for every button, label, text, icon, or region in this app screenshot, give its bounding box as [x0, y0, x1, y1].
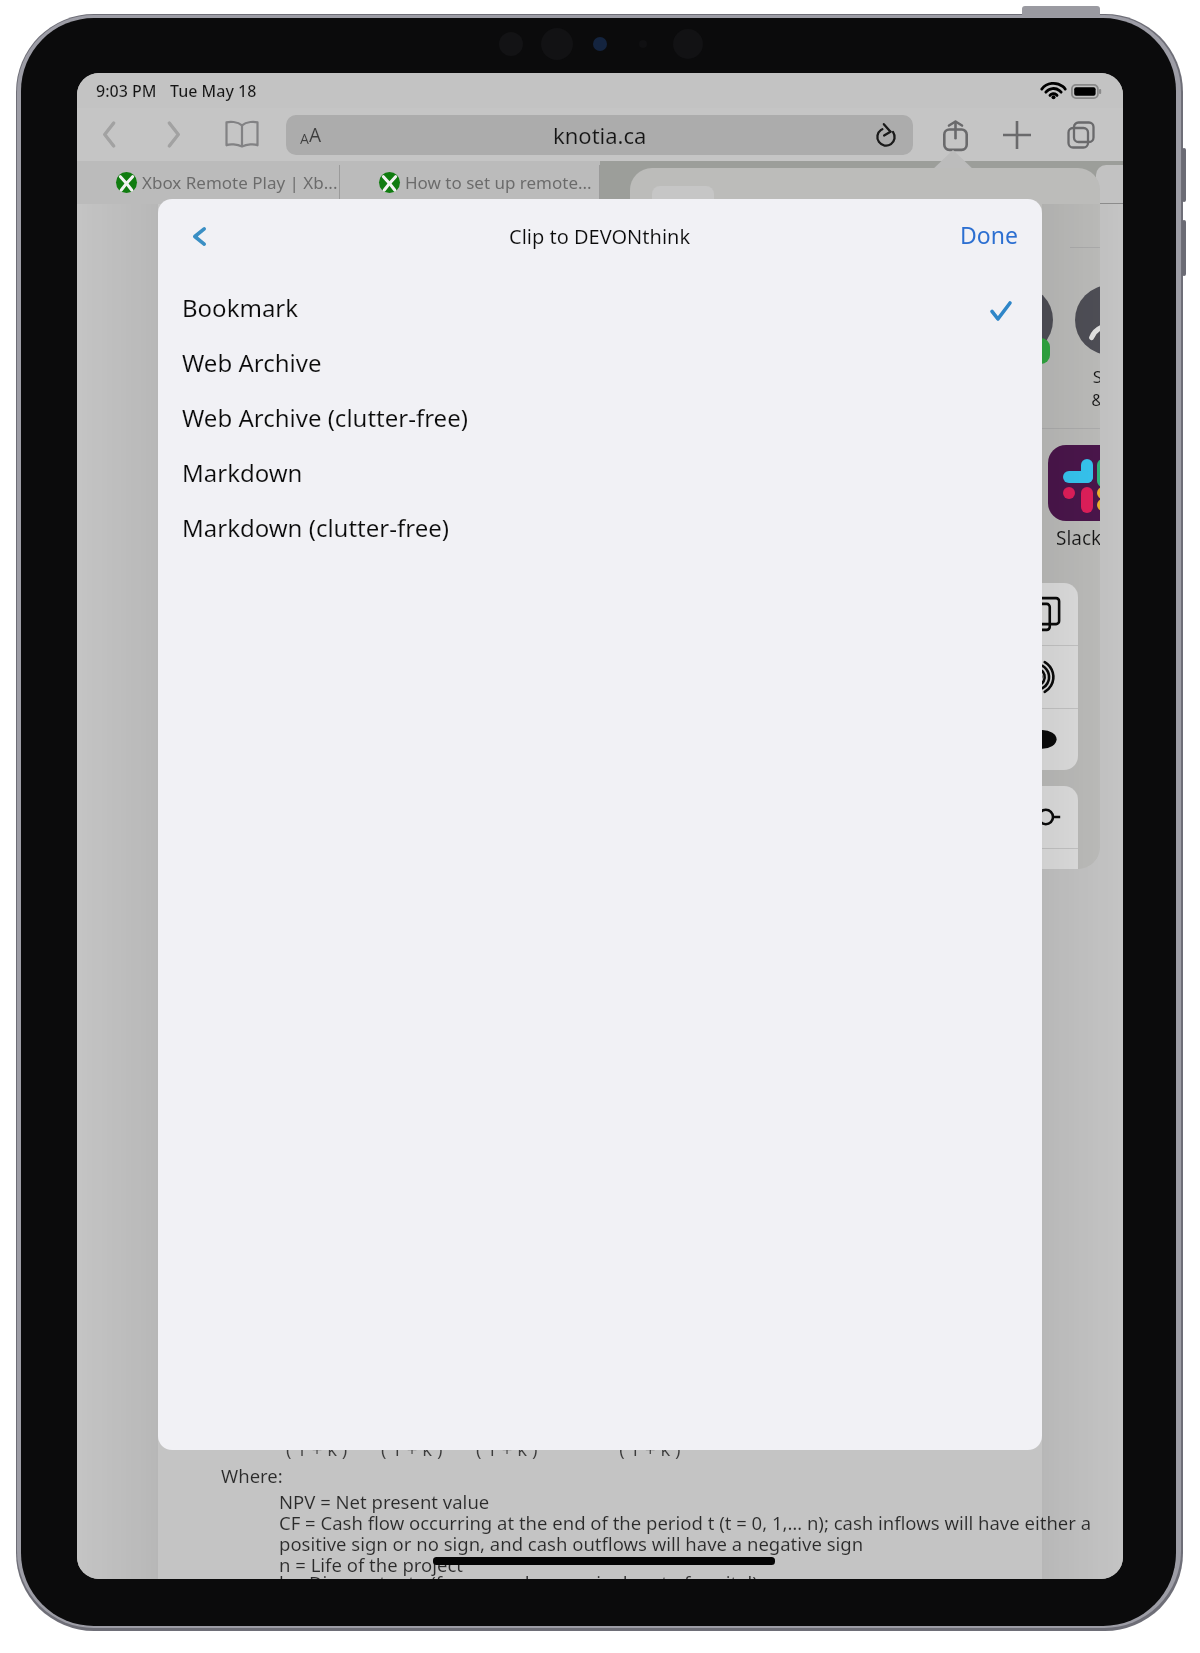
staticText: Web Archive (clutter-free) [182, 401, 468, 434]
staticText: Done [960, 219, 1018, 250]
staticText: ( 1 + k ) ( 1 + k ) ( 1 + k ) ( 1 + k ) [286, 1436, 681, 1461]
button[interactable]: Reload [859, 115, 913, 155]
button[interactable]: Web Archive [158, 335, 1042, 390]
staticText: 9:03 PM [96, 80, 157, 102]
button[interactable]: Show tabs [1057, 108, 1105, 161]
button[interactable]: Markdown (clutter-free) [158, 500, 1042, 555]
button[interactable]: Address bar, knotia.ca [286, 115, 913, 155]
staticText: CF = Cash flow occurring at the end of t… [279, 1510, 1092, 1535]
button[interactable]: Share with contact [983, 285, 1053, 395]
button[interactable]: Find on Page [648, 786, 1078, 848]
staticText: n = Life of the project [279, 1552, 464, 1577]
staticText: positive sign or no sign, and cash outfl… [279, 1531, 864, 1556]
button[interactable]: New tab [993, 108, 1041, 161]
button[interactable]: Add to Reading List [648, 709, 1078, 770]
staticText: NPV = Net present value [279, 1489, 490, 1514]
button[interactable]: Share to Slack [1048, 445, 1100, 521]
button[interactable]: Back [172, 205, 226, 267]
staticText: Xbox Remote Play | Xb... [142, 171, 338, 194]
staticText: Tue May 18 [170, 80, 257, 102]
button[interactable]: Share with contact [1075, 285, 1100, 395]
staticText: Clip to DEVONthink [509, 223, 691, 250]
button[interactable]: How to set up remote... [340, 161, 599, 204]
staticText: A [300, 129, 309, 148]
button[interactable]: Xbox Remote Play | Xb... [77, 161, 339, 204]
staticText: Markdown [182, 456, 303, 489]
button[interactable]: Back [86, 108, 133, 161]
staticText: Bookmark [182, 291, 299, 324]
staticText: Where: [221, 1463, 283, 1488]
button[interactable]: Forward [150, 108, 196, 161]
button[interactable]: Bookmarks [216, 108, 268, 161]
staticText: Markdown (clutter-free) [182, 511, 449, 544]
staticText: knotia.ca [553, 120, 647, 150]
button[interactable]: Bookmark [158, 280, 1042, 335]
staticText: Slack [1056, 525, 1100, 551]
button[interactable]: Share [931, 108, 979, 161]
button[interactable]: Copy [648, 583, 1078, 645]
button[interactable]: Markdown [158, 445, 1042, 500]
button[interactable]: Web Archive (clutter-free) [158, 390, 1042, 445]
staticText: How to set up remote... [405, 171, 592, 194]
button[interactable]: AirDrop [648, 646, 1078, 708]
staticText: S & [1091, 365, 1100, 411]
button[interactable]: More [648, 849, 1078, 869]
button[interactable]: Done [950, 209, 1028, 260]
staticText: k = Discount rate (for example, marginal… [279, 1570, 758, 1579]
staticText: A [309, 122, 322, 148]
staticText: Web Archive [182, 346, 322, 379]
